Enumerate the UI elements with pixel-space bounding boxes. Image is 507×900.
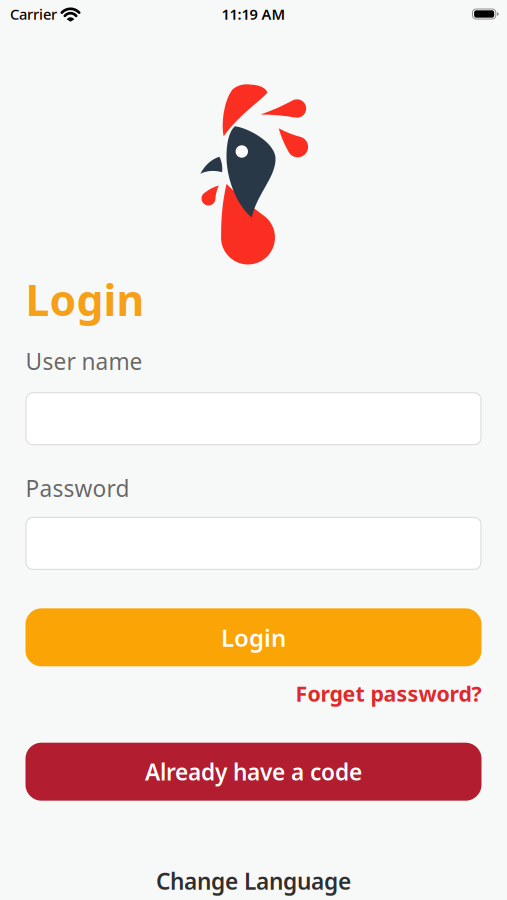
staticText: Forget password? [295, 679, 481, 708]
staticText: Login [221, 621, 286, 653]
button[interactable]: Forget password? [295, 679, 481, 708]
button[interactable]: Login [25, 608, 481, 666]
button[interactable]: Change Language [156, 866, 351, 896]
button[interactable]: Already have a code [25, 743, 481, 801]
staticText: User name [25, 346, 142, 376]
staticText: Login [25, 271, 144, 328]
staticText: Carrier [10, 4, 57, 24]
staticText: Change Language [156, 866, 351, 896]
staticText: 11:19 AM [221, 4, 285, 24]
staticText: Already have a code [145, 757, 362, 787]
staticText: Password [25, 473, 129, 503]
